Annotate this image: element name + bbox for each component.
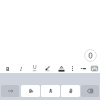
staticText: I [20, 65, 22, 72]
button[interactable]: Italic [14, 62, 26, 74]
button[interactable]: Bullet list [77, 62, 89, 74]
button[interactable]: GIF [61, 85, 80, 97]
button[interactable]: Highlight [41, 62, 53, 74]
button[interactable]: Stickers [41, 85, 60, 97]
button[interactable]: Keyboard [88, 62, 100, 74]
button[interactable]: Switch language [1, 85, 19, 97]
button[interactable]: Underline [28, 62, 40, 74]
button[interactable]: Emoji [21, 85, 40, 97]
button[interactable]: Text colour [55, 62, 67, 74]
button[interactable]: More options [66, 62, 78, 74]
staticText: U [33, 64, 37, 71]
button[interactable]: Bold [1, 62, 13, 74]
button[interactable]: Backspace [81, 85, 99, 97]
button[interactable]: Voice typing [84, 49, 97, 62]
staticText: B [6, 65, 10, 72]
